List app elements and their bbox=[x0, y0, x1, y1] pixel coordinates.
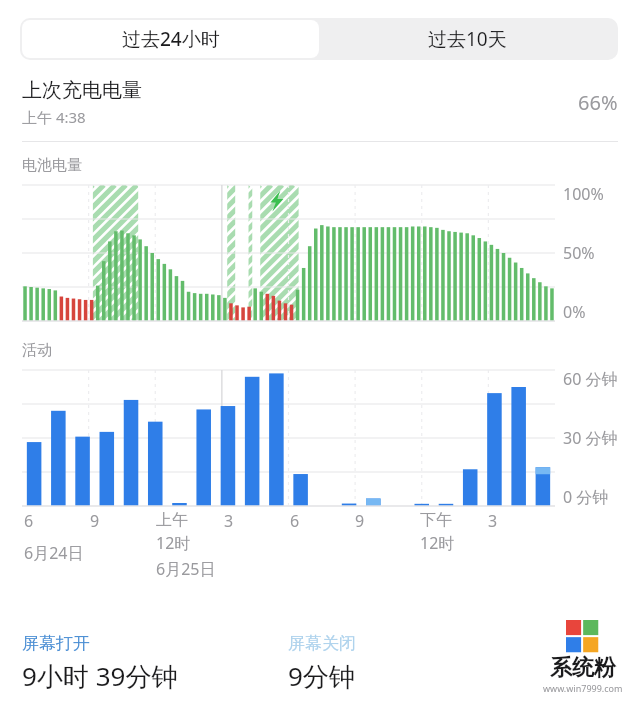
staticText: 6 bbox=[24, 510, 34, 532]
staticText: 屏幕打开 bbox=[22, 633, 90, 654]
button[interactable]: 上次充电电量 bbox=[22, 78, 618, 127]
staticText: 6月25日 bbox=[156, 558, 216, 580]
staticText: 66% bbox=[578, 89, 618, 116]
staticText: 12时 bbox=[156, 532, 191, 554]
staticText: 3 bbox=[488, 510, 498, 532]
button[interactable]: 屏幕打开 bbox=[22, 633, 288, 694]
staticText: 下午 bbox=[420, 510, 452, 530]
staticText: 电池电量 bbox=[22, 156, 82, 175]
staticText: 60 分钟 bbox=[563, 368, 618, 390]
staticText: 过去24小时 bbox=[122, 26, 220, 52]
button[interactable]: 过去24小时 bbox=[22, 20, 319, 58]
staticText: 50% bbox=[563, 242, 595, 264]
staticText: 9分钟 bbox=[288, 658, 355, 694]
staticText: 上午 4:38 bbox=[22, 107, 86, 127]
staticText: 系统粉 bbox=[550, 654, 616, 682]
staticText: 过去10天 bbox=[428, 26, 507, 52]
button[interactable]: 过去10天 bbox=[319, 20, 616, 58]
staticText: 活动 bbox=[22, 341, 52, 360]
staticText: 上午 bbox=[156, 510, 188, 530]
staticText: 3 bbox=[224, 510, 234, 532]
staticText: 6月24日 bbox=[24, 542, 84, 564]
staticText: 9小时 39分钟 bbox=[22, 658, 178, 694]
staticText: 0% bbox=[563, 301, 586, 323]
staticText: 100% bbox=[563, 183, 604, 205]
staticText: 上次充电电量 bbox=[22, 78, 142, 103]
staticText: 30 分钟 bbox=[563, 427, 618, 449]
button[interactable]: 屏幕关闭 bbox=[288, 633, 542, 694]
staticText: 9 bbox=[90, 510, 100, 532]
staticText: 6 bbox=[290, 510, 300, 532]
staticText: www.win7999.com bbox=[543, 682, 623, 694]
staticText: 0 分钟 bbox=[563, 486, 609, 508]
staticText: 9 bbox=[355, 510, 365, 532]
staticText: 屏幕关闭 bbox=[288, 633, 356, 654]
staticText: 12时 bbox=[420, 532, 455, 554]
other: Logo bbox=[542, 620, 624, 694]
